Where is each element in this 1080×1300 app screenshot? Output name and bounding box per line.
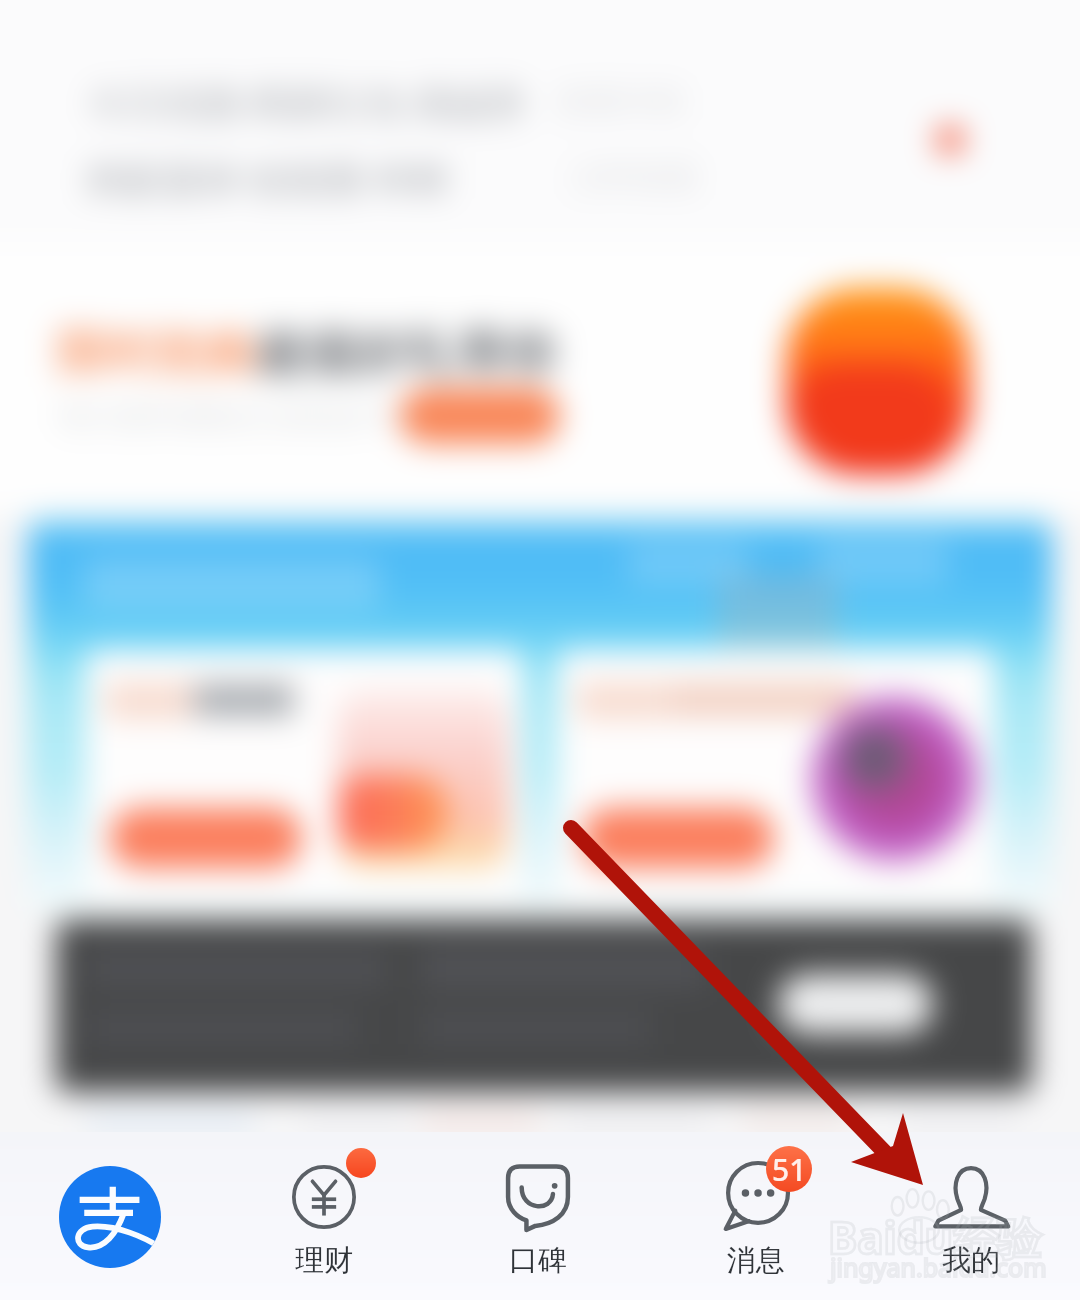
button[interactable]: 消息 bbox=[666, 1132, 846, 1300]
staticText: 超值好礼等你 bbox=[256, 322, 556, 385]
staticText: 蚂蚁森林·收能量·种树 bbox=[88, 152, 451, 204]
staticText: jingyan.baidu.com bbox=[830, 1250, 1047, 1284]
button[interactable]: 理财 bbox=[234, 1132, 414, 1300]
staticText: 51 bbox=[772, 1149, 807, 1190]
staticText: 每日签到领取红包奖励不停 bbox=[58, 398, 418, 436]
button[interactable]: 支付宝 首页 bbox=[59, 1166, 161, 1268]
staticText: 限时抢购 bbox=[56, 322, 256, 385]
staticText: 今日优惠·商家红包·满减券 bbox=[88, 76, 527, 128]
staticText: 消息 bbox=[727, 1242, 785, 1279]
staticText: 理财 bbox=[295, 1242, 353, 1279]
staticText: Baidu经验 bbox=[828, 1207, 1042, 1267]
staticText: 口碑 bbox=[509, 1242, 567, 1279]
staticText: Baidu经验 bbox=[828, 1207, 1042, 1267]
button[interactable]: 口碑 bbox=[448, 1132, 628, 1300]
button[interactable]: 我的 bbox=[881, 1132, 1061, 1300]
staticText: 我的 bbox=[942, 1242, 1000, 1279]
